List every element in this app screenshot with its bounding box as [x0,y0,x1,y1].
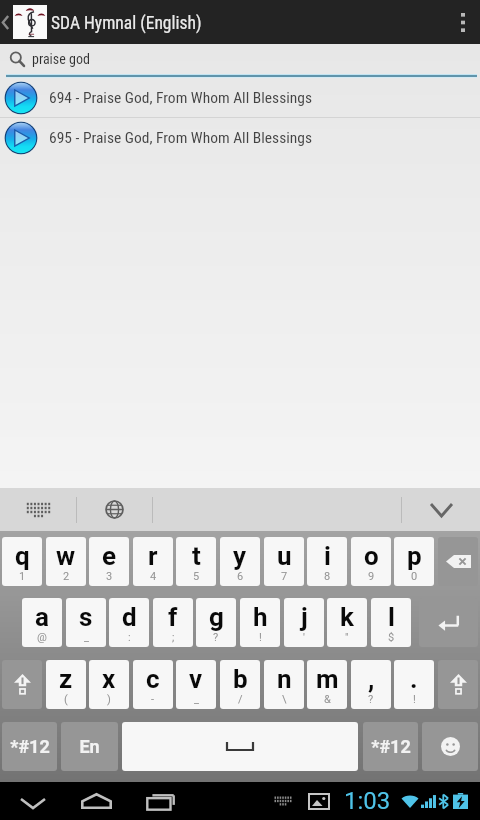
button[interactable]: Hide keyboard [402,488,480,531]
staticText: 7 [281,570,288,583]
staticText: . [410,664,418,694]
button[interactable]: a [22,598,62,647]
staticText: / [238,693,243,706]
staticText: u [277,541,292,571]
staticText: p [407,541,422,571]
staticText: 4 [150,570,157,583]
staticText: - [151,693,155,706]
staticText: 5 [193,570,200,583]
button[interactable]: Change language [77,488,152,531]
button[interactable]: t [176,537,216,586]
staticText: m [316,664,339,694]
staticText: 9 [368,570,375,583]
staticText: _ [84,631,89,644]
staticText: _ [194,693,199,706]
staticText: @ [37,631,47,644]
staticText: ! [259,631,262,644]
button[interactable]: u [264,537,304,586]
staticText: ) [107,693,111,706]
staticText: 695 - Praise God, From Whom All Blessing… [49,129,312,147]
staticText: r [148,541,158,571]
button[interactable]: g [196,598,236,647]
staticText: $ [388,631,395,644]
staticText: g [209,602,224,632]
staticText: 1 [19,570,26,583]
staticText: e [102,541,117,571]
staticText: \ [282,693,287,706]
staticText: f [168,602,178,632]
staticText: o [364,541,379,571]
button[interactable]: Home [69,782,124,820]
button[interactable]: 695 - Praise God, From Whom All Blessing… [0,118,480,157]
staticText: a [35,602,49,632]
button[interactable]: Shift [438,660,478,709]
button[interactable]: n [264,660,304,709]
button[interactable]: c [133,660,173,709]
button[interactable]: Delete [438,537,478,586]
staticText: l [388,602,395,632]
staticText: d [122,602,137,632]
button[interactable]: 694 - Praise God, From Whom All Blessing… [0,78,480,118]
staticText: z [59,664,73,694]
staticText: *#12 [371,736,411,757]
button[interactable]: Back [6,782,60,820]
button[interactable]: Space [122,722,358,771]
button[interactable]: *#12 [363,722,418,771]
button[interactable]: En [61,722,118,771]
staticText: 2 [63,570,70,583]
staticText: y [233,541,247,571]
button[interactable]: Recent apps [134,782,189,820]
staticText: " [345,631,349,644]
button[interactable]: Change keyboard [0,488,76,531]
button[interactable]: Navigate up [0,0,48,44]
button[interactable]: m [307,660,347,709]
button[interactable]: j [284,598,324,647]
staticText: & [324,693,331,706]
staticText: t [192,541,201,571]
staticText: c [146,664,160,694]
button[interactable]: q [2,537,42,586]
staticText: ? [368,693,374,706]
staticText: 6 [237,570,244,583]
staticText: ( [64,693,68,706]
button[interactable]: r [133,537,173,586]
button[interactable]: l [371,598,411,647]
button[interactable]: k [327,598,367,647]
staticText: ! [413,693,416,706]
button[interactable]: o [351,537,391,586]
staticText: 694 - Praise God, From Whom All Blessing… [49,89,312,107]
button[interactable]: Enter [419,598,478,647]
staticText: n [277,664,292,694]
button[interactable]: d [109,598,149,647]
button[interactable]: b [220,660,260,709]
button[interactable]: y [220,537,260,586]
button[interactable]: z [46,660,86,709]
staticText: SDA Hymnal (English) [51,13,202,34]
button[interactable]: *#12 [2,722,57,771]
staticText: *#12 [10,736,50,757]
staticText: : [128,631,131,644]
button[interactable]: v [176,660,216,709]
staticText: x [102,664,116,694]
button[interactable]: p [394,537,434,586]
button[interactable]: . [394,660,434,709]
button[interactable]: h [240,598,280,647]
button[interactable]: f [153,598,193,647]
button[interactable]: i [307,537,347,586]
staticText: j [301,602,308,632]
button[interactable]: x [89,660,129,709]
button[interactable]: Shift [2,660,42,709]
staticText: b [233,664,248,694]
staticText: q [15,541,30,571]
button[interactable]: Emoji [422,722,478,771]
button[interactable]: e [89,537,129,586]
button[interactable]: praise god [0,44,480,74]
staticText: k [340,602,354,632]
button[interactable]: s [66,598,106,647]
button[interactable]: More options [446,0,480,44]
staticText: 3 [106,570,113,583]
button[interactable]: , [351,660,391,709]
staticText: 0 [411,570,418,583]
button[interactable]: w [46,537,86,586]
staticText: , [368,664,375,694]
